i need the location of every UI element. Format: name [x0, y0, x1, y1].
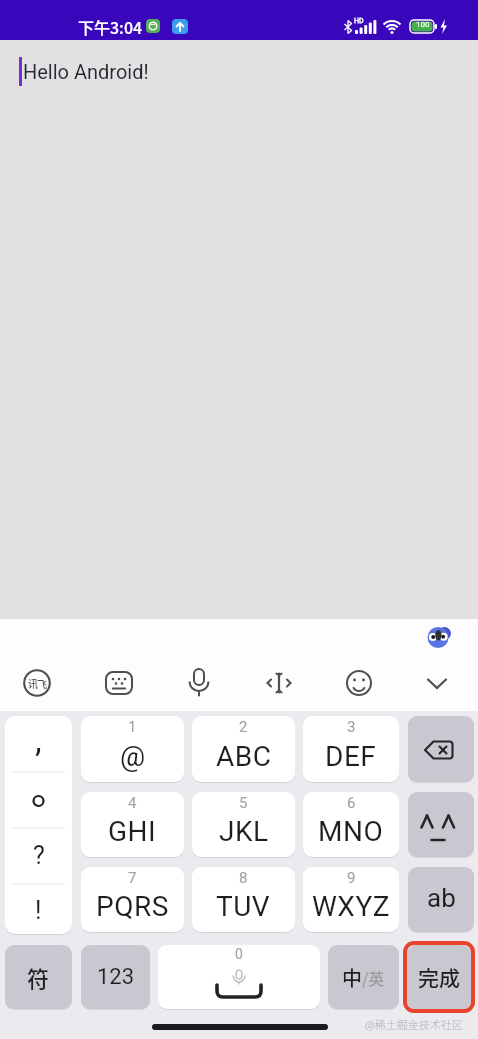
button[interactable]: 8	[192, 867, 295, 932]
button[interactable]: 3	[303, 716, 399, 782]
button[interactable]: 0	[158, 945, 320, 1009]
button[interactable]: 9	[303, 867, 399, 932]
button[interactable]: ,	[5, 716, 72, 934]
button[interactable]: 123	[81, 945, 150, 1009]
staticText: 9	[347, 869, 356, 887]
staticText: ?	[33, 841, 45, 870]
button[interactable]: 完成	[407, 945, 471, 1009]
button[interactable]	[183, 667, 215, 699]
staticText: PQRS	[96, 890, 169, 923]
button[interactable]	[421, 667, 453, 699]
staticText: 中	[342, 963, 362, 992]
staticText: !	[35, 896, 42, 925]
button[interactable]: 4	[81, 792, 184, 857]
button[interactable]: 7	[81, 867, 184, 932]
staticText: @稀土掘金技术社区	[365, 1016, 463, 1032]
button[interactable]: ab	[408, 867, 474, 932]
staticText: 7	[128, 869, 137, 887]
button[interactable]: 讯飞	[21, 667, 53, 699]
staticText: 8	[239, 869, 248, 887]
button[interactable]: 2	[192, 716, 295, 782]
staticText: 2	[239, 718, 248, 736]
button[interactable]: 中	[328, 945, 399, 1009]
staticText: GHI	[108, 815, 157, 848]
staticText: 3	[347, 718, 356, 736]
button[interactable]	[103, 667, 135, 699]
staticText: ab	[427, 883, 456, 913]
staticText: WXYZ	[312, 890, 390, 923]
staticText: 6	[347, 794, 356, 812]
staticText: TUV	[216, 890, 271, 923]
button[interactable]: 5	[192, 792, 295, 857]
staticText: 1	[128, 718, 137, 736]
staticText: 5	[239, 794, 248, 812]
staticText: 下午3:04	[78, 15, 143, 38]
staticText: 0	[235, 946, 243, 962]
staticText: 完成	[418, 962, 460, 992]
staticText: Hello Android!	[23, 60, 149, 83]
staticText: @	[120, 740, 146, 773]
staticText: 讯飞	[28, 676, 46, 690]
button[interactable]: 符	[5, 945, 72, 1009]
button[interactable]: 1	[81, 716, 184, 782]
staticText: ,	[35, 720, 42, 760]
staticText: DEF	[325, 740, 377, 773]
button[interactable]	[427, 625, 451, 649]
staticText: /英	[362, 966, 385, 989]
staticText: HD	[354, 17, 364, 25]
staticText: 123	[97, 964, 135, 990]
staticText: ABC	[216, 740, 272, 773]
button[interactable]	[408, 792, 474, 857]
staticText: 4	[128, 794, 137, 812]
button[interactable]	[263, 667, 295, 699]
staticText: MNO	[318, 815, 384, 848]
button[interactable]	[408, 716, 474, 782]
staticText: 100	[416, 20, 430, 29]
staticText: 符	[27, 961, 50, 993]
staticText: JKL	[219, 815, 269, 848]
button[interactable]	[343, 667, 375, 699]
button[interactable]: 6	[303, 792, 399, 857]
